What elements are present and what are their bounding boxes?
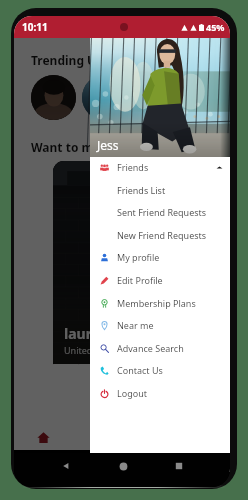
staticText: Want to meet new people? — [31, 139, 191, 155]
button[interactable]: Like — [127, 371, 173, 398]
button[interactable]: Logout — [90, 382, 230, 404]
button[interactable]: Sent Friend Requests — [90, 201, 230, 223]
button[interactable]: Edit Profile — [90, 269, 230, 291]
button[interactable]: Friends — [90, 156, 230, 178]
staticText: Trending Users — [31, 52, 121, 68]
staticText: Advance Search — [117, 342, 184, 354]
button[interactable]: Advance Search — [90, 337, 230, 359]
staticText: Sent Friend Requests — [117, 206, 207, 218]
staticText: Near me — [117, 319, 154, 331]
staticText: laura22 — [64, 324, 117, 343]
staticText: New Friend Requests — [117, 229, 207, 241]
staticText: 45% — [206, 21, 225, 33]
staticText: Contact Us — [117, 364, 163, 376]
button[interactable]: Home — [37, 431, 50, 444]
button[interactable]: Friends List — [90, 179, 230, 201]
staticText: Edit Profile — [117, 274, 163, 286]
staticText: My profile — [117, 251, 160, 263]
staticText: United States — [64, 344, 121, 356]
staticText: 10:11 — [22, 20, 48, 34]
button[interactable]: Near me — [90, 314, 230, 336]
button[interactable]: New Friend Requests — [90, 224, 230, 246]
staticText: Jess — [97, 137, 119, 153]
staticText: Friends List — [117, 184, 166, 196]
staticText: Friends — [117, 161, 149, 173]
button[interactable]: Contact Us — [90, 359, 230, 381]
button[interactable]: My profile — [90, 246, 230, 268]
button[interactable]: Membership Plans — [90, 292, 230, 314]
staticText: Membership Plans — [117, 297, 196, 309]
staticText: Logout — [117, 387, 147, 399]
